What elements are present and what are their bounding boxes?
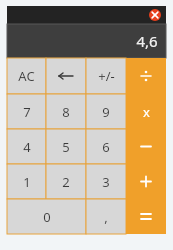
button[interactable]: 0	[7, 199, 86, 234]
button[interactable]: Close	[149, 9, 161, 21]
staticText: x	[143, 103, 150, 121]
staticText: 4	[23, 138, 31, 156]
staticText: 2	[62, 173, 70, 191]
button[interactable]: 1	[7, 164, 46, 199]
button[interactable]: x	[126, 94, 166, 129]
button[interactable]: ,	[86, 199, 126, 234]
staticText: 5	[62, 138, 70, 156]
staticText: 7	[23, 103, 31, 121]
button[interactable]: 9	[86, 94, 126, 129]
button[interactable]: +/-	[86, 58, 126, 94]
button[interactable]: Equals	[126, 199, 166, 234]
button[interactable]: Backspace	[46, 58, 86, 94]
staticText: 4,6	[136, 31, 158, 51]
button[interactable]: Minus	[126, 129, 166, 164]
button[interactable]: Divide	[126, 58, 166, 94]
staticText: 0	[43, 208, 51, 226]
staticText: ,	[104, 208, 108, 226]
staticText: 1	[23, 173, 31, 191]
button[interactable]: Plus	[126, 164, 166, 199]
button[interactable]: 2	[46, 164, 86, 199]
staticText: +/-	[98, 67, 115, 85]
button[interactable]: 3	[86, 164, 126, 199]
staticText: 9	[102, 103, 110, 121]
button[interactable]: 5	[46, 129, 86, 164]
button[interactable]: 8	[46, 94, 86, 129]
button[interactable]: AC	[7, 58, 46, 94]
button[interactable]: 6	[86, 129, 126, 164]
staticText: 8	[62, 103, 70, 121]
button[interactable]: 4	[7, 129, 46, 164]
staticText: 6	[102, 138, 110, 156]
staticText: AC	[18, 67, 35, 85]
staticText: 3	[102, 173, 110, 191]
button[interactable]: 7	[7, 94, 46, 129]
